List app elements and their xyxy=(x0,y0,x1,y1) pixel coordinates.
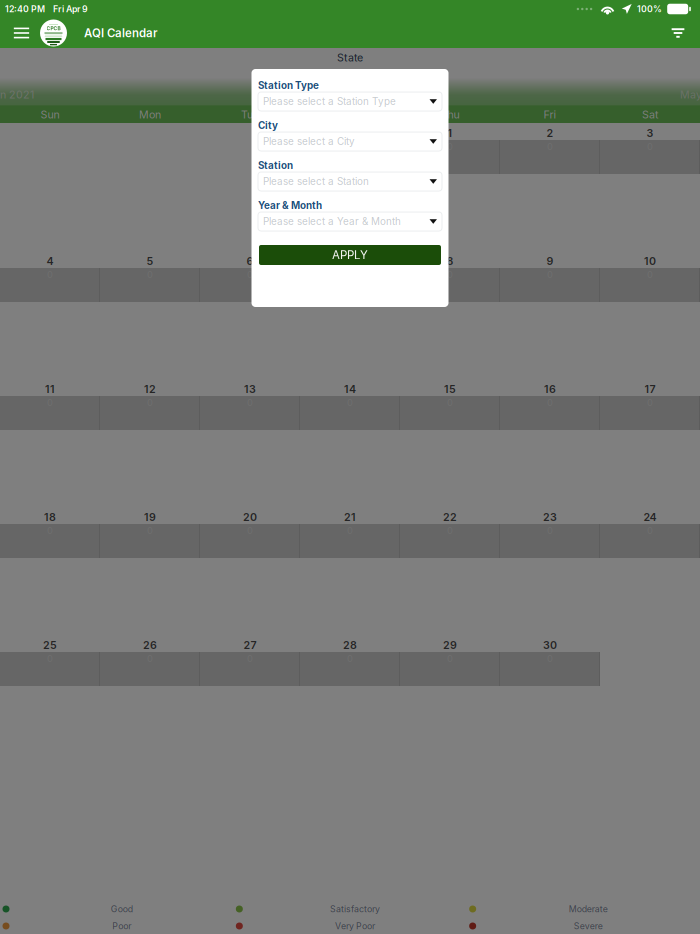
staticText: 27 xyxy=(243,638,256,651)
staticText: City xyxy=(258,119,278,131)
staticText: Station Type xyxy=(258,79,319,91)
staticText: CPCB xyxy=(46,25,60,31)
button[interactable]: Open menu xyxy=(7,18,36,48)
staticText: 20 xyxy=(243,510,257,523)
staticText: Please select a Station xyxy=(263,175,369,187)
staticText: 0 xyxy=(447,141,453,152)
staticText: 26 xyxy=(143,638,157,651)
staticText: Thu xyxy=(440,108,459,121)
staticText: 1 xyxy=(447,126,452,139)
staticText: 29 xyxy=(443,638,457,651)
staticText: 3 xyxy=(646,126,653,139)
staticText: 25 xyxy=(43,638,57,651)
staticText: Tue xyxy=(241,108,259,121)
staticText: 17 xyxy=(644,382,655,395)
staticText: Fri Apr 9 xyxy=(53,4,88,14)
staticText: 13 xyxy=(244,382,256,395)
staticText: Satisfactory xyxy=(330,904,380,914)
staticText: Mon xyxy=(139,108,161,121)
staticText: May xyxy=(680,88,700,101)
staticText: Jan 2021 xyxy=(0,88,34,101)
staticText: 12:40 PM xyxy=(5,4,45,14)
staticText: Please select a Station Type xyxy=(263,95,396,107)
staticText: 9 xyxy=(546,254,553,267)
button[interactable]: State xyxy=(290,49,410,65)
staticText: Please select a Year & Month xyxy=(263,215,401,227)
staticText: Please select a City xyxy=(263,135,355,147)
staticText: 16 xyxy=(544,382,556,395)
staticText: Very Poor xyxy=(335,921,375,931)
staticText: Fri xyxy=(543,108,556,121)
staticText: 10 xyxy=(644,254,656,267)
staticText: 6 xyxy=(246,254,253,267)
staticText: Moderate xyxy=(569,904,608,914)
staticText: Station xyxy=(258,159,293,171)
button[interactable]: Please select a Year & Month xyxy=(258,212,442,231)
staticText: 0 xyxy=(447,269,453,280)
staticText: 30 xyxy=(543,638,557,651)
staticText: 21 xyxy=(344,510,356,523)
staticText: 23 xyxy=(543,510,557,523)
staticText: 2 xyxy=(546,126,553,139)
staticText: Wed xyxy=(338,108,361,121)
staticText: Sat xyxy=(642,108,658,121)
staticText: AQI Calendar xyxy=(84,26,158,40)
button[interactable]: Please select a Station xyxy=(258,172,442,191)
staticText: State xyxy=(337,51,363,64)
staticText: 5 xyxy=(146,254,153,267)
staticText: 15 xyxy=(444,382,456,395)
staticText: 24 xyxy=(643,510,656,523)
button[interactable]: Please select a Station Type xyxy=(258,92,442,111)
button[interactable]: May xyxy=(680,86,700,102)
button[interactable]: Filter xyxy=(664,18,692,48)
staticText: Sun xyxy=(40,108,59,121)
staticText: 0 xyxy=(247,269,253,280)
staticText: Poor xyxy=(112,921,131,931)
button[interactable]: Please select a City xyxy=(258,132,442,151)
staticText: 7 xyxy=(347,254,353,267)
staticText: 11 xyxy=(45,382,55,395)
staticText: 4 xyxy=(46,254,53,267)
button[interactable]: APPLY xyxy=(259,245,441,265)
staticText: 14 xyxy=(344,382,356,395)
staticText: 19 xyxy=(144,510,156,523)
staticText: 22 xyxy=(443,510,457,523)
staticText: 28 xyxy=(343,638,357,651)
staticText: 8 xyxy=(446,254,453,267)
staticText: Severe xyxy=(574,921,603,931)
staticText: 12 xyxy=(144,382,156,395)
staticText: Good xyxy=(111,904,133,914)
staticText: Year & Month xyxy=(258,199,322,211)
staticText: 100% xyxy=(637,4,662,14)
button[interactable]: Jan 2021 xyxy=(0,86,34,102)
staticText: APPLY xyxy=(332,248,368,262)
staticText: 18 xyxy=(44,510,56,523)
